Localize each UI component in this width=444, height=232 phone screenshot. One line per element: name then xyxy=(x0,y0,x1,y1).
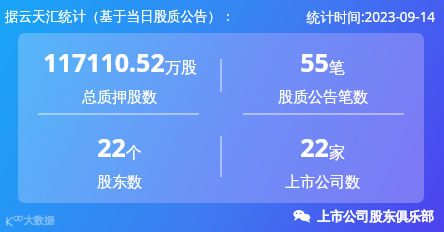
button[interactable]: 上市公司股东俱乐部 WeChat xyxy=(293,208,434,224)
staticText: 家 xyxy=(329,143,345,163)
staticText: 22 xyxy=(300,130,329,164)
staticText: 55 xyxy=(300,45,329,79)
staticText: 股质公告笔数 xyxy=(278,88,368,107)
staticText: 117110.52 xyxy=(43,45,165,79)
staticText: 股东数 xyxy=(97,173,142,192)
staticText: 个 xyxy=(126,143,142,163)
staticText: 22 xyxy=(97,130,126,164)
staticText: 笔 xyxy=(329,58,345,78)
button[interactable]: 22 xyxy=(221,118,424,203)
staticText: 上市公司股东俱乐部 xyxy=(317,208,434,224)
button[interactable]: 117110.52 xyxy=(18,33,221,118)
staticText: 大数据 xyxy=(24,214,54,227)
staticText: 万股 xyxy=(165,58,197,78)
staticText: 总质押股数 xyxy=(82,88,157,107)
staticText: 据云天汇统计（基于当日股质公告）： xyxy=(5,8,235,25)
button[interactable]: 55 xyxy=(221,33,424,118)
staticText: 上市公司数 xyxy=(285,173,360,192)
staticText: 统计时间:2023-09-14 xyxy=(307,8,436,26)
button[interactable]: 22 xyxy=(18,118,221,203)
